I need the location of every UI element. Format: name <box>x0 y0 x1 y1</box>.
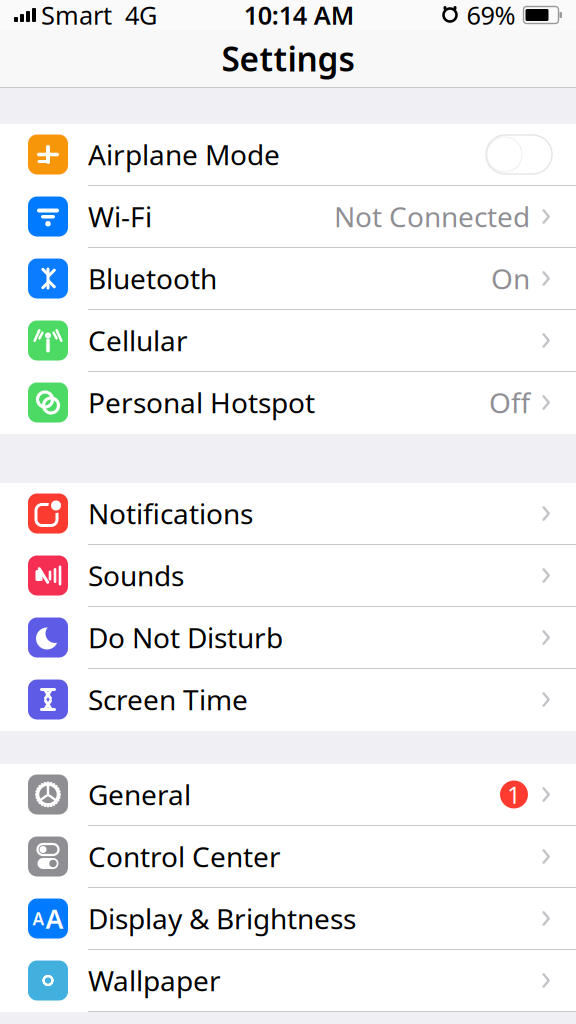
button[interactable]: Bluetooth <box>0 248 576 310</box>
staticText: Cellular <box>88 322 188 359</box>
staticText: A <box>45 901 63 936</box>
staticText: 1 <box>507 779 521 810</box>
staticText: Off <box>489 384 530 421</box>
staticText: Notifications <box>88 495 253 532</box>
staticText: Do Not Disturb <box>88 619 283 656</box>
staticText: A <box>32 907 44 930</box>
staticText: Settings <box>221 36 354 81</box>
staticText: Screen Time <box>88 681 248 718</box>
staticText: Control Center <box>88 838 281 875</box>
staticText: On <box>491 260 530 297</box>
staticText: Sounds <box>88 557 184 594</box>
staticText: Wi-Fi <box>88 198 152 235</box>
button[interactable]: Wi-Fi <box>0 186 576 248</box>
staticText: Airplane Mode <box>88 136 280 173</box>
staticText: Display & Brightness <box>88 900 356 937</box>
staticText: General <box>88 776 191 813</box>
staticText: Smart <box>41 0 112 32</box>
staticText: Wallpaper <box>88 962 221 999</box>
button[interactable]: General <box>0 764 576 826</box>
button[interactable]: A <box>0 888 576 950</box>
staticText: Bluetooth <box>88 260 217 297</box>
button[interactable]: Screen Time <box>0 669 576 731</box>
button[interactable]: Personal Hotspot <box>0 372 576 434</box>
button[interactable]: Notifications <box>0 483 576 545</box>
staticText: 4G <box>125 0 157 32</box>
staticText: Not Connected <box>334 198 530 235</box>
button[interactable]: Control Center <box>0 826 576 888</box>
staticText: 10:14 AM <box>244 0 355 32</box>
staticText: 69% <box>466 0 515 32</box>
button[interactable]: Airplane Mode <box>0 124 576 186</box>
button[interactable]: Do Not Disturb <box>0 607 576 669</box>
button[interactable]: Cellular <box>0 310 576 372</box>
staticText: Personal Hotspot <box>88 384 315 421</box>
button[interactable]: Sounds <box>0 545 576 607</box>
button[interactable]: Wallpaper <box>0 950 576 1012</box>
